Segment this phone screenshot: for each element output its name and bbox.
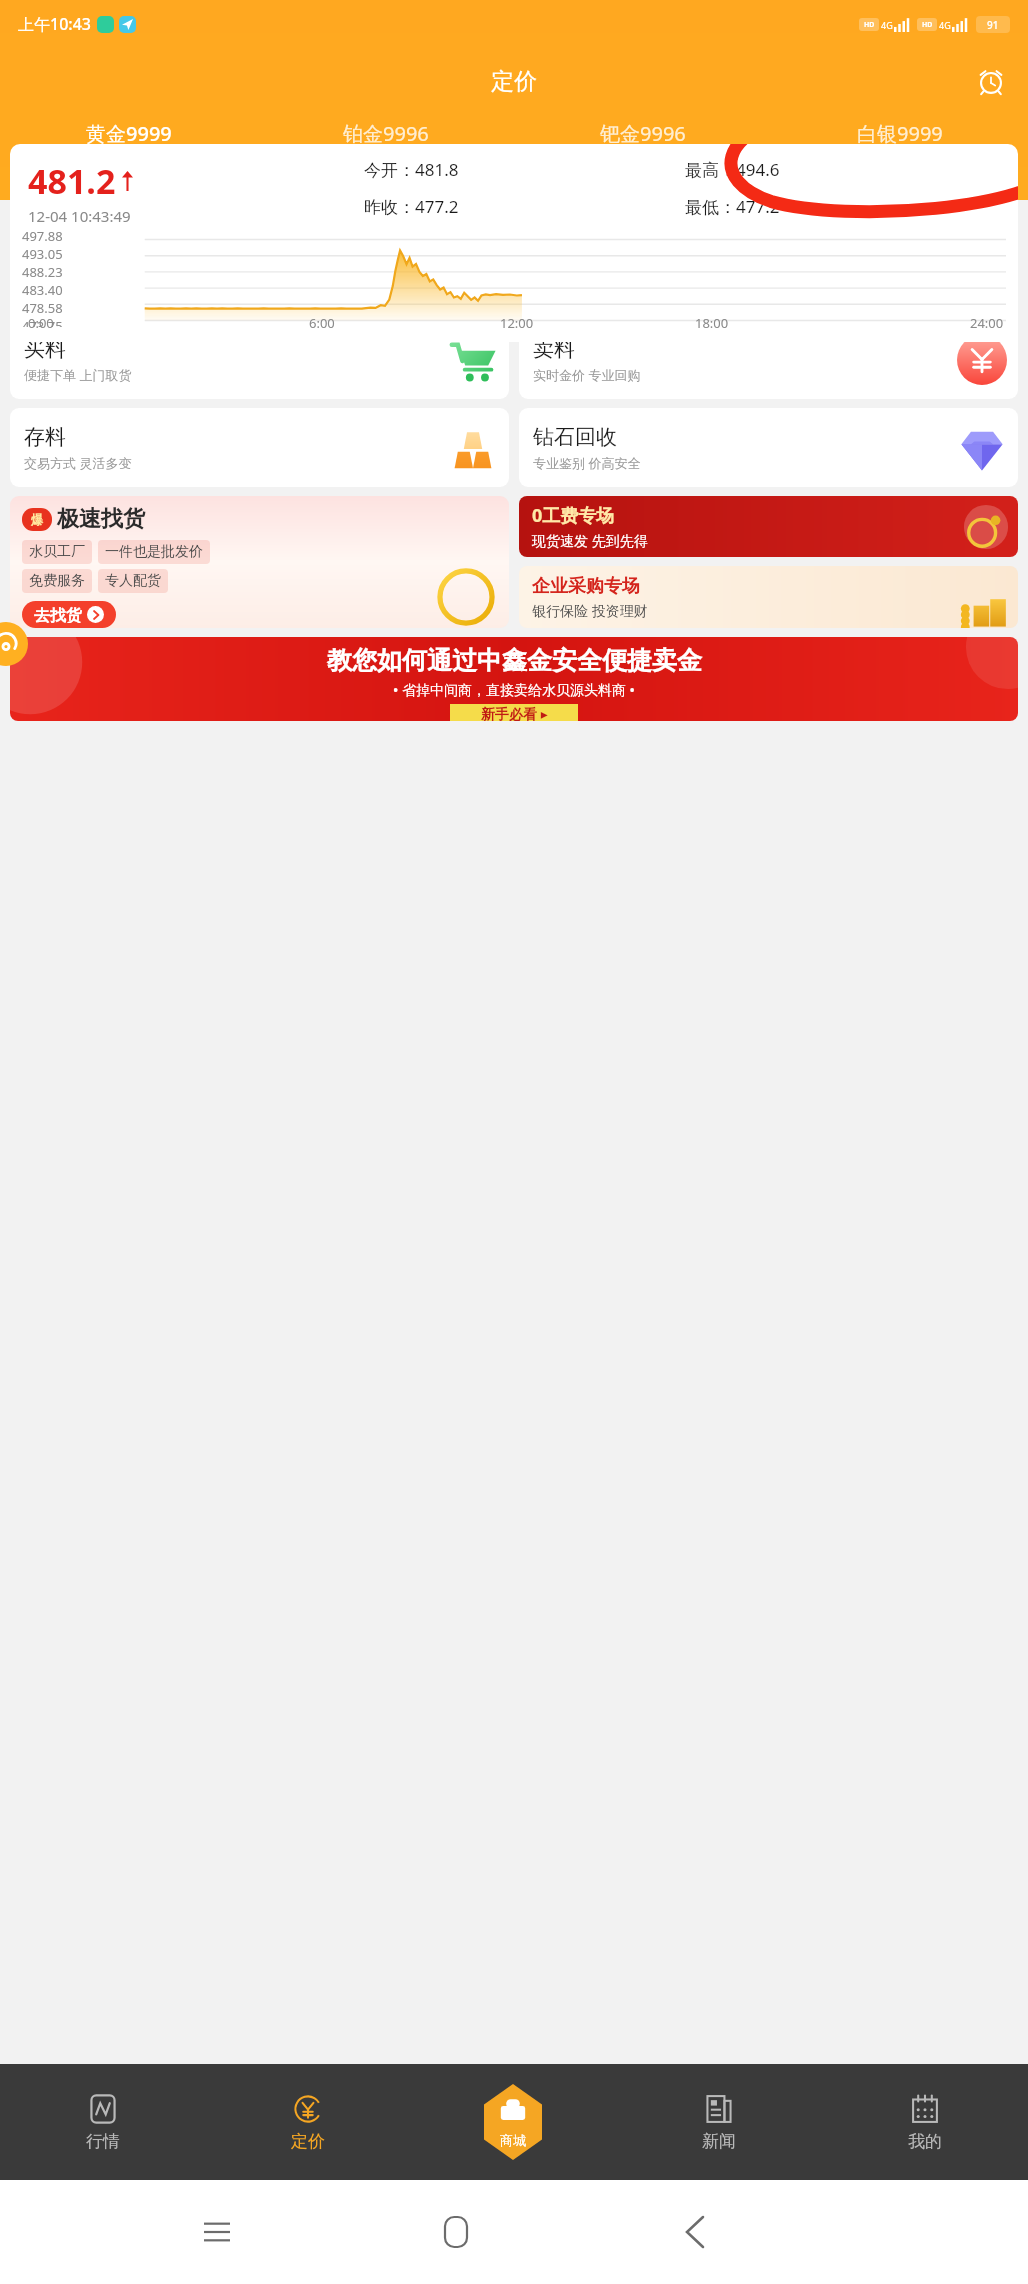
- button[interactable]: 我的: [822, 2064, 1028, 2180]
- staticText: 新闻: [702, 2131, 736, 2152]
- staticText: 4G: [881, 19, 893, 31]
- staticText: 钯金9996: [600, 120, 686, 147]
- staticText: 现货速发 先到先得: [532, 531, 648, 550]
- staticText: 商城: [500, 2132, 526, 2148]
- staticText: 企业采购专场: [532, 575, 640, 598]
- button[interactable]: 0工费专场: [519, 496, 1018, 557]
- staticText: 昨收：477.2: [364, 195, 459, 218]
- button[interactable]: 新闻: [616, 2064, 822, 2180]
- staticText: 爆: [31, 512, 43, 527]
- button[interactable]: 教您如何通过中鑫金安全便捷卖金: [10, 637, 1018, 721]
- button[interactable]: Back: [672, 2209, 718, 2255]
- staticText: 488.23: [22, 263, 63, 281]
- button[interactable]: 钯金9996: [514, 118, 771, 170]
- button[interactable]: Recent apps: [194, 2209, 240, 2255]
- staticText: 478.58: [22, 299, 63, 317]
- button[interactable]: 爆: [10, 496, 509, 628]
- staticText: 铂金9996: [343, 120, 429, 147]
- staticText: 24:00: [970, 314, 1004, 332]
- button[interactable]: 钻石回收: [519, 408, 1018, 487]
- staticText: 6:00: [309, 314, 335, 332]
- staticText: 卖料: [533, 336, 575, 362]
- staticText: 4G: [939, 19, 951, 31]
- button[interactable]: Price alarm: [972, 62, 1010, 100]
- staticText: 483.40: [22, 281, 63, 299]
- staticText: 去找货: [34, 606, 82, 623]
- staticText: 专业鉴别 价高安全: [533, 454, 641, 472]
- button[interactable]: 买料: [10, 320, 509, 399]
- staticText: 新手必看 ▸: [481, 704, 548, 721]
- staticText: • 省掉中间商，直接卖给水贝源头料商 •: [393, 680, 635, 699]
- button[interactable]: 商城: [410, 2064, 616, 2180]
- button[interactable]: 黄金9999: [0, 118, 257, 170]
- staticText: 回购: [369, 147, 403, 168]
- staticText: 493.05: [22, 245, 63, 263]
- staticText: 教您如何通过中鑫金安全便捷卖金: [327, 645, 702, 676]
- staticText: 专人配货: [105, 572, 161, 590]
- button[interactable]: 行情: [0, 2064, 205, 2180]
- staticText: 水贝工厂: [29, 543, 85, 561]
- staticText: 定价: [291, 2131, 325, 2152]
- staticText: 481.2: [28, 158, 116, 204]
- staticText: 今开：481.8: [364, 158, 459, 181]
- staticText: 交易方式 灵活多变: [24, 454, 132, 472]
- staticText: 行情: [86, 2131, 120, 2152]
- button[interactable]: 白银9999: [771, 118, 1028, 170]
- button[interactable]: 定价: [205, 2064, 410, 2180]
- button[interactable]: Home: [433, 2209, 479, 2255]
- staticText: 白银9999: [857, 120, 943, 147]
- staticText: 最低：477.2: [685, 195, 780, 218]
- staticText: 买料: [24, 336, 66, 362]
- staticText: HD: [864, 20, 875, 30]
- staticText: 我的: [908, 2131, 942, 2152]
- button[interactable]: 卖料: [519, 320, 1018, 399]
- staticText: HD: [922, 20, 933, 30]
- button[interactable]: Customer service: [0, 622, 28, 666]
- staticText: 473.75: [22, 317, 63, 327]
- staticText: 银行保险 投资理财: [532, 601, 648, 620]
- staticText: 钻石回收: [533, 424, 617, 450]
- staticText: 实时金价 专业回购: [533, 366, 641, 384]
- staticText: 0:00: [28, 314, 54, 332]
- staticText: 极速找货: [57, 505, 145, 533]
- staticText: 存料: [24, 424, 66, 450]
- staticText: 上午10:43: [18, 13, 91, 35]
- button[interactable]: 企业采购专场: [519, 566, 1018, 628]
- button[interactable]: 481.2: [10, 144, 1018, 342]
- staticText: 0工费专场: [532, 503, 615, 528]
- staticText: 定价: [491, 67, 537, 96]
- staticText: 免费服务: [29, 572, 85, 590]
- button[interactable]: 铂金9996: [257, 118, 514, 170]
- staticText: 黄金9999: [86, 120, 172, 147]
- staticText: 12-04 10:43:49: [28, 206, 131, 226]
- staticText: 18:00: [695, 314, 729, 332]
- staticText: 91: [987, 18, 999, 32]
- button[interactable]: 去找货: [34, 606, 104, 623]
- staticText: 一件也是批发价: [105, 543, 203, 561]
- staticText: 便捷下单 上门取货: [24, 366, 132, 384]
- staticText: 497.88: [22, 227, 63, 245]
- staticText: 最高：494.6: [685, 158, 780, 181]
- button[interactable]: 存料: [10, 408, 509, 487]
- staticText: 12:00: [500, 314, 534, 332]
